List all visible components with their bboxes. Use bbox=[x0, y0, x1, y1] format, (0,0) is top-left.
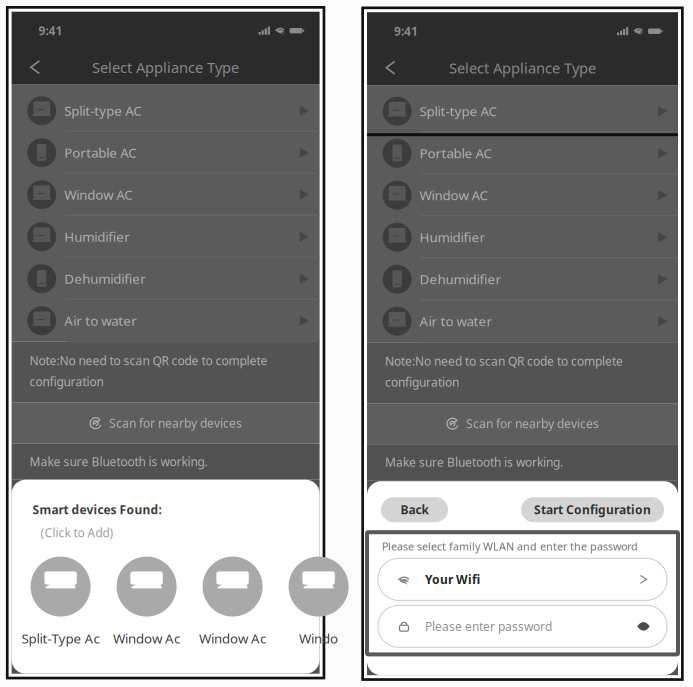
staticText: Make sure Bluetooth is working. bbox=[385, 454, 563, 470]
button[interactable]: Portable AC bbox=[367, 132, 678, 174]
button[interactable]: Scan for nearby devices bbox=[12, 403, 320, 444]
staticText: configuration bbox=[385, 374, 459, 390]
button[interactable]: Portable AC bbox=[12, 132, 320, 174]
staticText: Windo bbox=[299, 630, 338, 647]
button[interactable]: Air to water bbox=[12, 300, 320, 342]
button[interactable]: Split-Type Ac bbox=[18, 557, 104, 647]
staticText: (Click to Add) bbox=[41, 525, 114, 540]
staticText: Split-type AC bbox=[420, 102, 497, 120]
staticText: Scan for nearby devices bbox=[466, 416, 599, 432]
staticText: Start Configuration bbox=[534, 502, 651, 518]
button[interactable]: Windo bbox=[276, 557, 362, 647]
staticText: Please enter password bbox=[425, 618, 552, 634]
button[interactable]: Window AC bbox=[367, 174, 678, 216]
staticText: Select Appliance Type bbox=[449, 58, 596, 77]
staticText: Dehumidifier bbox=[64, 270, 146, 287]
button[interactable]: Dehumidifier bbox=[12, 258, 320, 300]
staticText: Window Ac bbox=[113, 630, 180, 647]
button[interactable]: Split-type AC bbox=[367, 90, 678, 132]
button[interactable]: Air to water bbox=[367, 300, 678, 342]
staticText: 9:41 bbox=[394, 23, 418, 39]
staticText: Portable AC bbox=[420, 144, 492, 162]
staticText: Back bbox=[400, 502, 428, 518]
staticText: Split-Type Ac bbox=[22, 630, 100, 647]
button[interactable]: Window AC bbox=[12, 174, 320, 216]
staticText: Dehumidifier bbox=[420, 270, 502, 288]
staticText: Window Ac bbox=[199, 630, 266, 647]
button[interactable]: Dehumidifier bbox=[367, 258, 678, 300]
button[interactable]: Start Configuration bbox=[521, 497, 664, 522]
staticText: Please select family WLAN and enter the … bbox=[382, 539, 638, 553]
staticText: 9:41 bbox=[39, 23, 63, 39]
button[interactable]: Humidifier bbox=[367, 216, 678, 258]
button[interactable]: Back bbox=[381, 497, 448, 522]
button[interactable]: Your Wifi bbox=[378, 558, 667, 600]
staticText: Make sure Bluetooth is working. bbox=[30, 454, 208, 470]
staticText: Air to water bbox=[420, 312, 493, 330]
staticText: Note:No need to scan QR code to complete bbox=[30, 353, 268, 369]
button[interactable]: Back bbox=[375, 50, 406, 85]
staticText: configuration bbox=[30, 374, 104, 389]
staticText: Window AC bbox=[64, 186, 132, 203]
button[interactable]: Please enter password bbox=[378, 605, 667, 647]
staticText: Humidifier bbox=[420, 228, 486, 246]
button[interactable]: Window Ac bbox=[190, 557, 276, 647]
staticText: Your Wifi bbox=[425, 571, 480, 587]
button[interactable]: Scan for nearby devices bbox=[367, 403, 678, 444]
staticText: Window AC bbox=[420, 186, 488, 204]
staticText: Scan for nearby devices bbox=[109, 415, 242, 431]
staticText: Humidifier bbox=[64, 228, 130, 245]
staticText: Portable AC bbox=[64, 144, 136, 161]
button[interactable]: Window Ac bbox=[104, 557, 190, 647]
button[interactable]: Humidifier bbox=[12, 216, 320, 258]
staticText: Split-type AC bbox=[64, 102, 141, 119]
staticText: Smart devices Found: bbox=[33, 502, 162, 518]
staticText: Note:No need to scan QR code to complete bbox=[385, 353, 623, 369]
button[interactable]: Back bbox=[20, 50, 51, 85]
staticText: Air to water bbox=[64, 312, 137, 329]
staticText: Select Appliance Type bbox=[92, 57, 239, 77]
button[interactable]: Split-type AC bbox=[12, 90, 320, 132]
